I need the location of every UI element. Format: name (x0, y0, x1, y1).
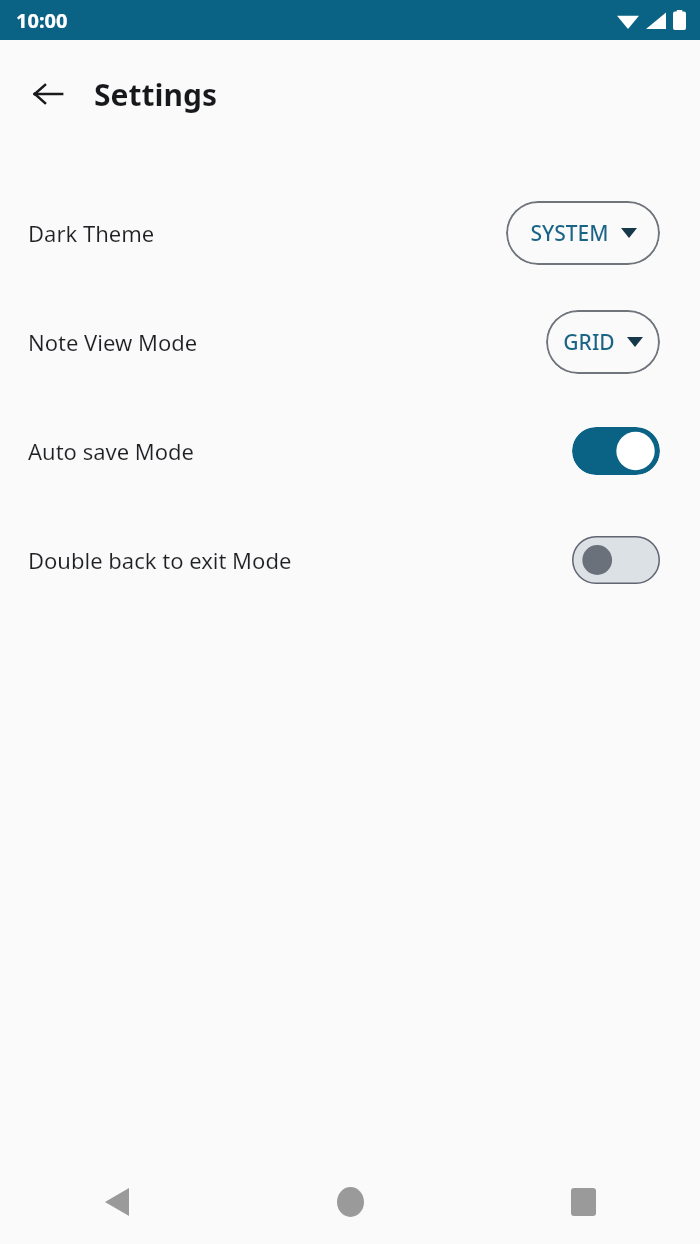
button[interactable]: Home (234, 1160, 467, 1244)
button[interactable]: Double back to exit Mode (0, 505, 700, 614)
button[interactable]: Auto save Mode (0, 396, 700, 505)
button[interactable]: Double back to exit Mode (572, 536, 660, 584)
button[interactable]: Note View Mode (0, 287, 700, 396)
staticText: 10:00 (16, 7, 68, 34)
staticText: Double back to exit Mode (28, 545, 572, 575)
staticText: Note View Mode (28, 327, 546, 357)
staticText: Settings (94, 74, 217, 115)
staticText: Dark Theme (28, 218, 506, 248)
button[interactable]: Recent apps (467, 1160, 700, 1244)
staticText: GRID (563, 328, 615, 357)
button[interactable]: Auto save Mode (572, 427, 660, 475)
button[interactable]: Back (0, 1160, 234, 1244)
staticText: Auto save Mode (28, 436, 572, 466)
button[interactable]: Back (18, 64, 78, 124)
button[interactable]: GRID (546, 310, 660, 374)
button[interactable]: SYSTEM (506, 201, 660, 265)
staticText: SYSTEM (530, 219, 609, 248)
button[interactable]: Dark Theme (0, 178, 700, 287)
